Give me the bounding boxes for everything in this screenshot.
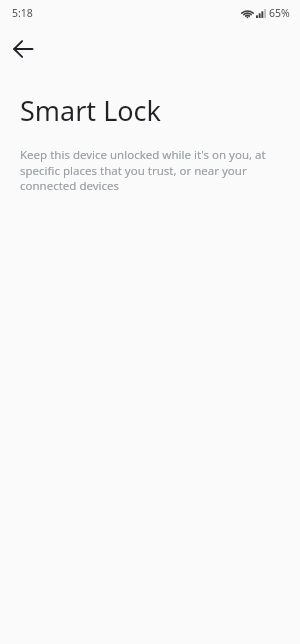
staticText: 5:18 bbox=[12, 6, 33, 20]
staticText: Smart Lock bbox=[20, 92, 161, 129]
staticText: Keep this device unlocked while it's on … bbox=[20, 147, 284, 193]
button[interactable]: Back bbox=[5, 31, 41, 67]
staticText: 65% bbox=[269, 6, 290, 20]
